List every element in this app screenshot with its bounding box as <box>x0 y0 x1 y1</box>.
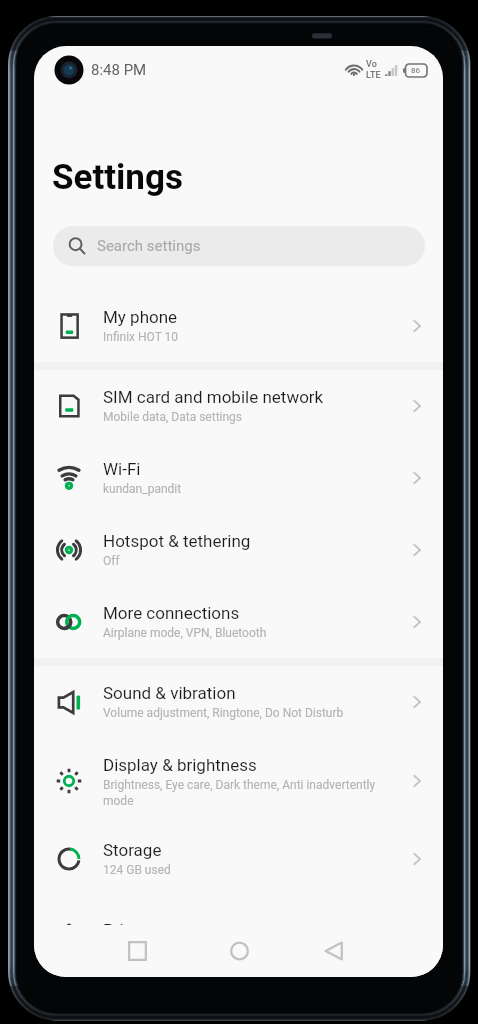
staticText: More connections <box>103 603 240 623</box>
button[interactable]: Recent apps <box>102 925 172 977</box>
staticText: 124 GB used <box>103 863 171 877</box>
staticText: Privacy <box>103 920 158 925</box>
button[interactable]: Hotspot & tethering <box>34 514 443 586</box>
button[interactable]: Home <box>204 925 274 977</box>
staticText: Hotspot & tethering <box>103 531 251 551</box>
staticText: Search settings <box>97 237 201 255</box>
button[interactable]: More connections <box>34 586 443 658</box>
button[interactable]: Privacy <box>34 895 443 925</box>
staticText: Wi-Fi <box>103 459 141 479</box>
staticText: Settings <box>52 157 183 198</box>
button[interactable]: Storage <box>34 823 443 895</box>
button[interactable]: Wi-Fi <box>34 442 443 514</box>
staticText: Airplane mode, VPN, Bluetooth <box>103 626 267 640</box>
staticText: Mobile data, Data settings <box>103 410 243 424</box>
staticText: My phone <box>103 307 178 327</box>
staticText: Sound & vibration <box>103 683 236 703</box>
staticText: Storage <box>103 840 162 860</box>
staticText: Infinix HOT 10 <box>103 330 179 344</box>
staticText: SIM card and mobile network <box>103 387 324 407</box>
staticText: 8:48 PM <box>91 61 147 79</box>
staticText: Vo <box>366 59 377 70</box>
staticText: Display & brightness <box>103 755 257 775</box>
staticText: kundan_pandit <box>103 482 182 496</box>
button[interactable]: Search settings <box>53 226 425 266</box>
staticText: Volume adjustment, Ringtone, Do Not Dist… <box>103 706 344 720</box>
staticText: LTE <box>366 70 381 81</box>
button[interactable]: Display & brightness <box>34 738 443 823</box>
staticText: 86 <box>411 66 420 75</box>
button[interactable]: Back <box>298 925 368 977</box>
button[interactable]: My phone <box>34 290 443 362</box>
button[interactable]: SIM card and mobile network <box>34 370 443 442</box>
staticText: Brightness, Eye care, Dark theme, Anti i… <box>103 778 401 808</box>
staticText: Off <box>103 554 120 568</box>
button[interactable]: Sound & vibration <box>34 666 443 738</box>
